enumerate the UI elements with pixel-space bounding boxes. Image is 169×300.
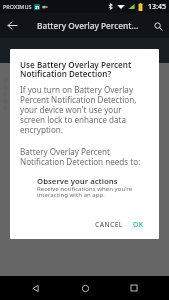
button[interactable]: Search — [147, 15, 169, 37]
staticText: 21 — [35, 5, 40, 10]
button[interactable]: Navigate up — [0, 13, 25, 38]
staticText: PROXIMUS — [3, 3, 32, 10]
staticText: 13:45 — [148, 2, 166, 12]
staticText: Battery Overlay Percent... — [37, 20, 139, 31]
staticText: Receive notifications when you're intera… — [37, 184, 151, 199]
button[interactable]: Home — [70, 276, 100, 300]
staticText: If you turn on Battery Overlay Percent N… — [20, 84, 143, 135]
button[interactable]: OK — [128, 215, 149, 234]
staticText: CANCEL — [95, 220, 123, 229]
staticText: Battery Overlay Percent Notification Det… — [20, 146, 143, 167]
button[interactable]: Back — [20, 276, 50, 300]
staticText: Observe your actions — [37, 176, 118, 187]
button[interactable]: Recent apps — [119, 276, 149, 300]
button[interactable]: CANCEL — [90, 215, 128, 234]
staticText: Use Battery Overlay Percent Notification… — [20, 59, 143, 79]
staticText: OK — [133, 220, 144, 229]
